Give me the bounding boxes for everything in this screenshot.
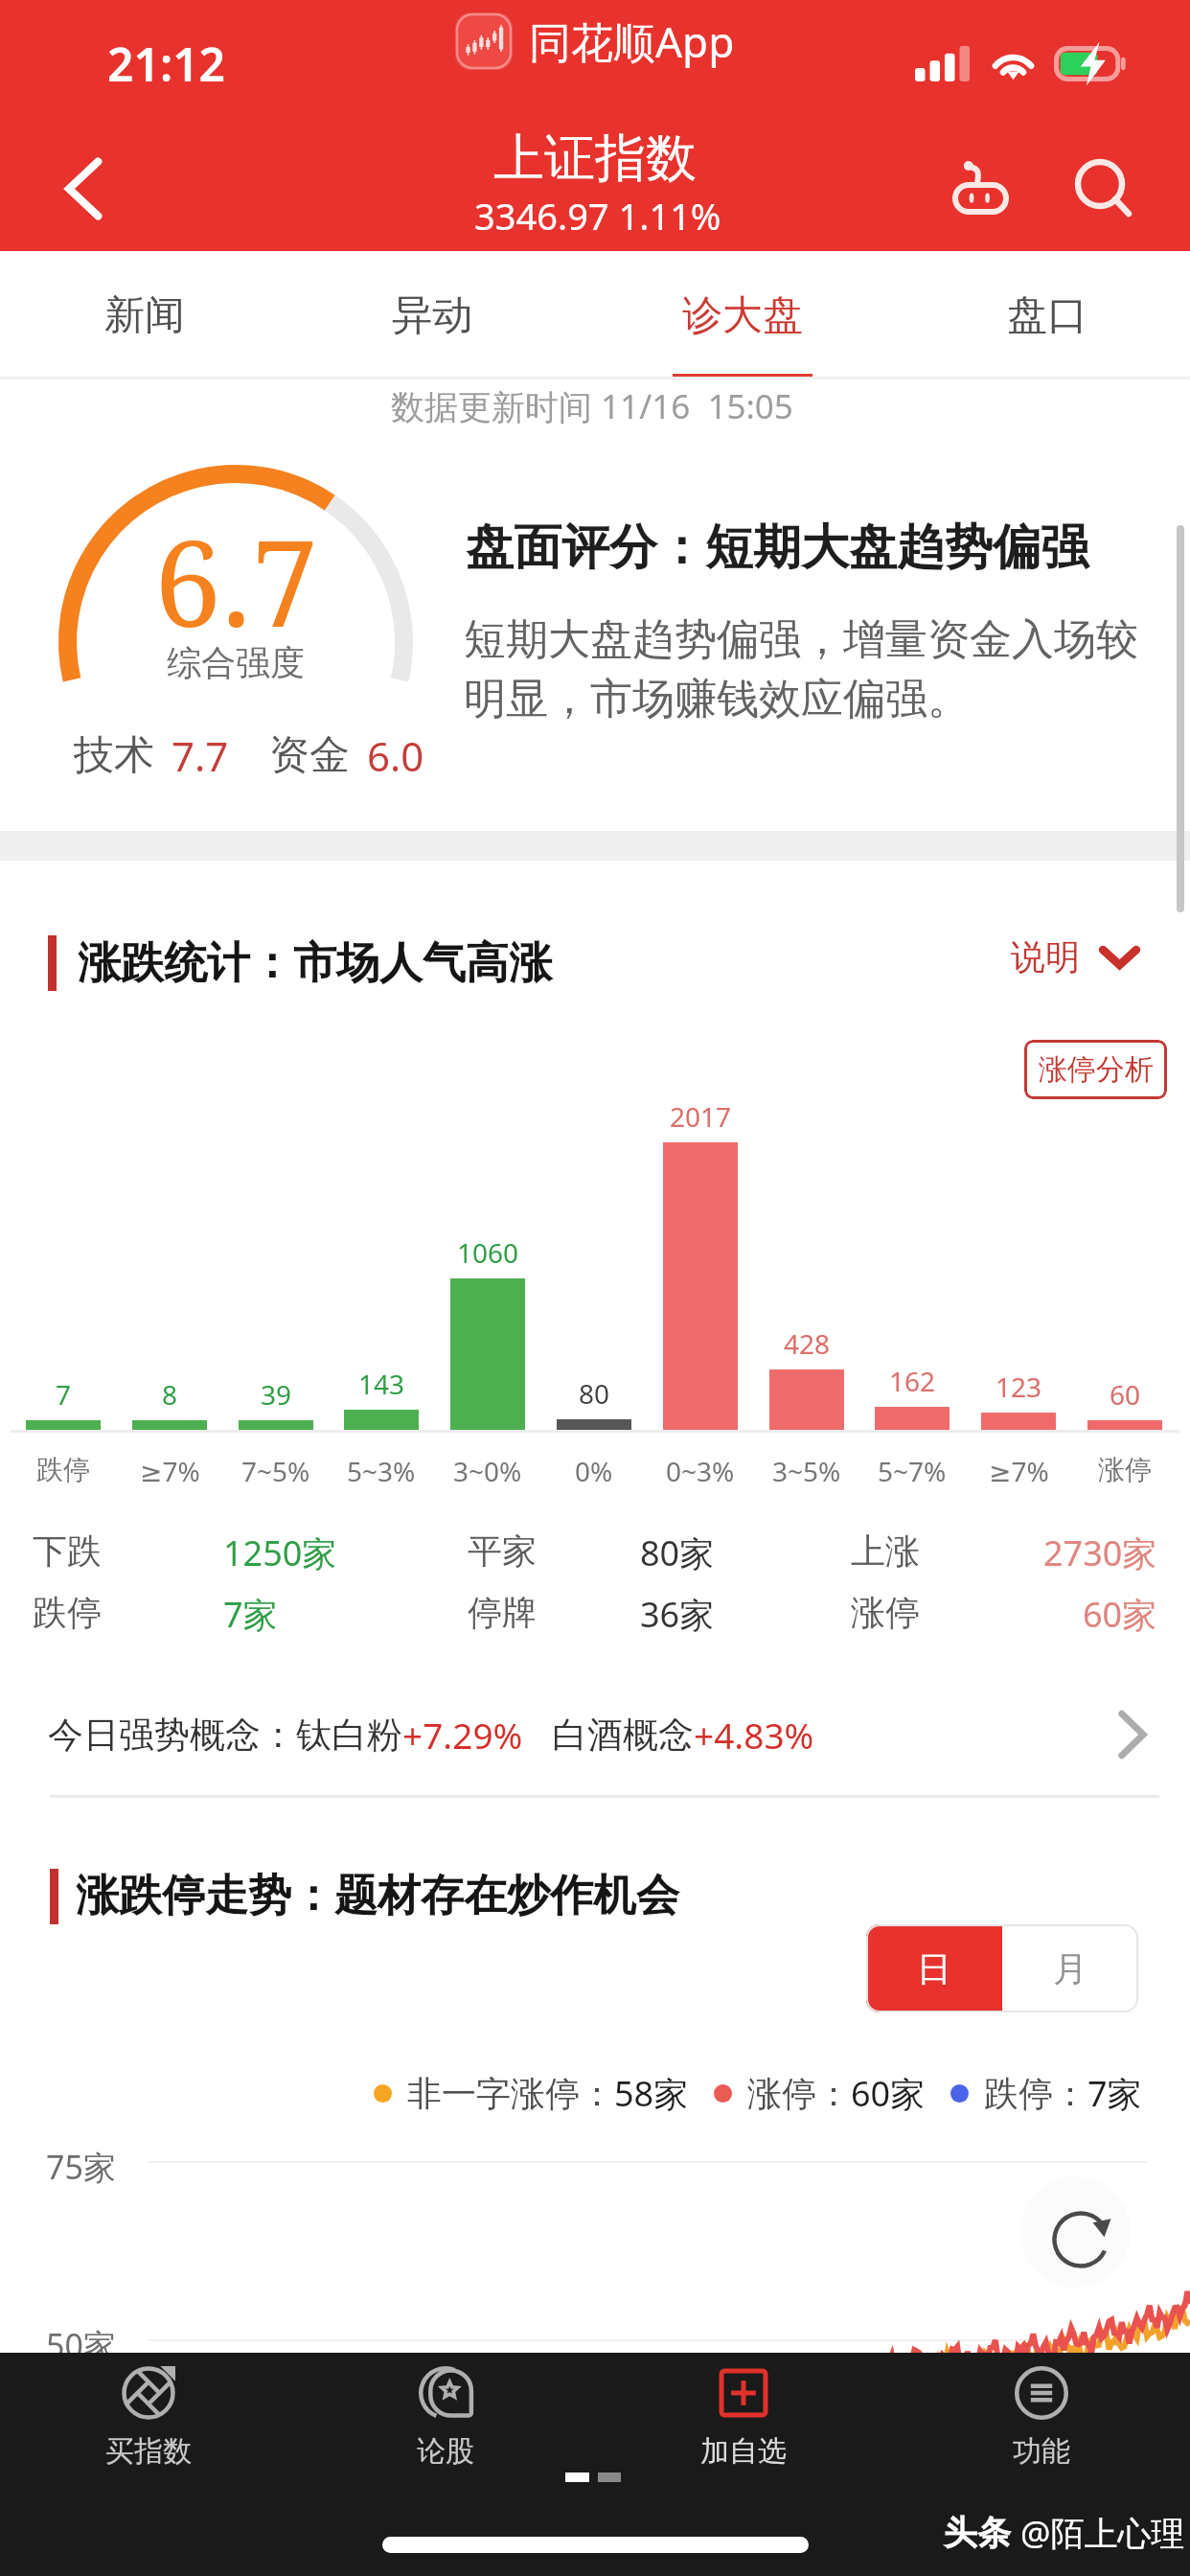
button[interactable]: 加自选 — [594, 2353, 892, 2516]
staticText: 跌停 — [33, 1591, 102, 1634]
staticText: 停牌 — [468, 1591, 537, 1634]
button[interactable]: 异动 — [284, 251, 581, 377]
staticText: 涨停 — [851, 1591, 920, 1634]
staticText: 上证指数 — [493, 126, 697, 191]
button[interactable]: Back — [29, 126, 140, 251]
staticText: 7~5% — [241, 1453, 310, 1489]
staticText: 21:12 — [107, 33, 226, 95]
staticText: 7家 — [1087, 2070, 1142, 2117]
staticText: 涨停： — [747, 2072, 851, 2115]
staticText: 2017 — [670, 1098, 732, 1135]
staticText: 涨停分析 — [1039, 1051, 1154, 1088]
staticText: 说明 — [1011, 935, 1080, 978]
staticText: 上涨 — [851, 1529, 920, 1573]
staticText: 8 — [162, 1376, 178, 1413]
staticText: 0% — [575, 1453, 613, 1489]
staticText: 3~0% — [453, 1453, 522, 1489]
staticText: 月 — [1053, 1947, 1087, 1990]
staticText: 买指数 — [105, 2433, 192, 2470]
button[interactable]: Search — [1047, 135, 1153, 241]
staticText: 今日强势概念： — [48, 1713, 296, 1758]
staticText: 同花顺App — [529, 12, 735, 70]
button[interactable]: AI assistant — [925, 137, 1034, 242]
staticText: 2730家 — [1043, 1529, 1157, 1576]
staticText: 非一字涨停： — [407, 2072, 614, 2115]
staticText: 功能 — [1013, 2433, 1070, 2470]
staticText: 123 — [995, 1368, 1042, 1405]
staticText: 盘口 — [1007, 290, 1087, 341]
staticText: 80 — [579, 1375, 610, 1412]
staticText: 数据更新时间 11/16 15:05 — [391, 383, 793, 429]
staticText: 跌停 — [36, 1453, 90, 1486]
staticText: 钛白粉 — [296, 1713, 402, 1758]
staticText: 36家 — [640, 1591, 715, 1638]
staticText: 异动 — [392, 290, 472, 341]
button[interactable]: Refresh — [1019, 2176, 1131, 2288]
staticText: 跌停： — [984, 2072, 1087, 2115]
staticText: 5~7% — [878, 1453, 947, 1489]
staticText: 短期大盘趋势偏强，增量资金入场较明显，市场赚钱效应偏强。 — [464, 613, 1168, 725]
staticText: 39 — [261, 1376, 292, 1413]
staticText: 75家 — [46, 2145, 116, 2189]
button[interactable]: 功能 — [892, 2353, 1190, 2516]
staticText: 7 — [56, 1376, 72, 1413]
staticText: 1250家 — [223, 1529, 337, 1576]
staticText: 涨跌停走势：题材存在炒作机会 — [76, 1869, 679, 1923]
staticText: 50家 — [46, 2323, 116, 2367]
staticText: 平家 — [468, 1529, 537, 1573]
button[interactable]: 月 — [1002, 1924, 1138, 2012]
button[interactable]: 日 — [866, 1924, 1002, 2012]
staticText: 涨跌统计：市场人气高涨 — [78, 936, 552, 991]
staticText: 60家 — [851, 2070, 926, 2117]
staticText: 6.7 — [154, 498, 318, 661]
staticText: 6.0 — [367, 728, 424, 783]
staticText: 162 — [889, 1363, 936, 1399]
staticText: 428 — [784, 1325, 831, 1362]
staticText: 7.7 — [172, 728, 229, 783]
button[interactable]: 买指数 — [0, 2353, 297, 2516]
staticText: +4.83% — [694, 1711, 814, 1759]
staticText: 1060 — [457, 1234, 519, 1271]
staticText: 综合强度 — [167, 641, 305, 684]
staticText: ≥7% — [140, 1453, 200, 1489]
button[interactable]: 新闻 — [0, 251, 293, 377]
staticText: 58家 — [614, 2070, 689, 2117]
staticText: 头条 — [944, 2512, 1011, 2554]
staticText: 143 — [358, 1366, 405, 1402]
staticText: 技术 — [74, 730, 154, 781]
staticText: +7.29% — [402, 1711, 523, 1759]
button[interactable]: 盘口 — [899, 251, 1190, 377]
button[interactable]: 说明 — [999, 924, 1152, 990]
button[interactable]: 论股 — [297, 2353, 594, 2516]
staticText: 诊大盘 — [682, 290, 803, 341]
staticText: 新闻 — [104, 290, 185, 341]
staticText: 60 — [1110, 1376, 1141, 1413]
button[interactable]: 涨停分析 — [1024, 1040, 1167, 1099]
staticText: 盘面评分：短期大盘趋势偏强 — [466, 517, 1088, 578]
staticText: 日 — [917, 1947, 951, 1990]
button[interactable]: 今日强势概念： — [0, 1673, 1190, 1796]
staticText: 3346.97 1.11% — [474, 191, 721, 241]
staticText: 5~3% — [347, 1453, 416, 1489]
staticText: 0~3% — [666, 1453, 735, 1489]
staticText: 80家 — [640, 1529, 715, 1576]
staticText: 60家 — [1083, 1591, 1157, 1638]
staticText: 加自选 — [700, 2433, 787, 2470]
staticText: 下跌 — [33, 1529, 102, 1573]
staticText: 涨停 — [1098, 1453, 1152, 1486]
staticText: 7家 — [223, 1591, 278, 1638]
staticText: @陌上心理 — [1020, 2510, 1185, 2556]
staticText: 资金 — [269, 730, 350, 781]
staticText: 论股 — [417, 2433, 474, 2470]
staticText: ≥7% — [989, 1453, 1049, 1489]
staticText: 3~5% — [772, 1453, 841, 1489]
button[interactable]: 诊大盘 — [594, 251, 891, 377]
staticText: 白酒概念 — [552, 1713, 694, 1758]
